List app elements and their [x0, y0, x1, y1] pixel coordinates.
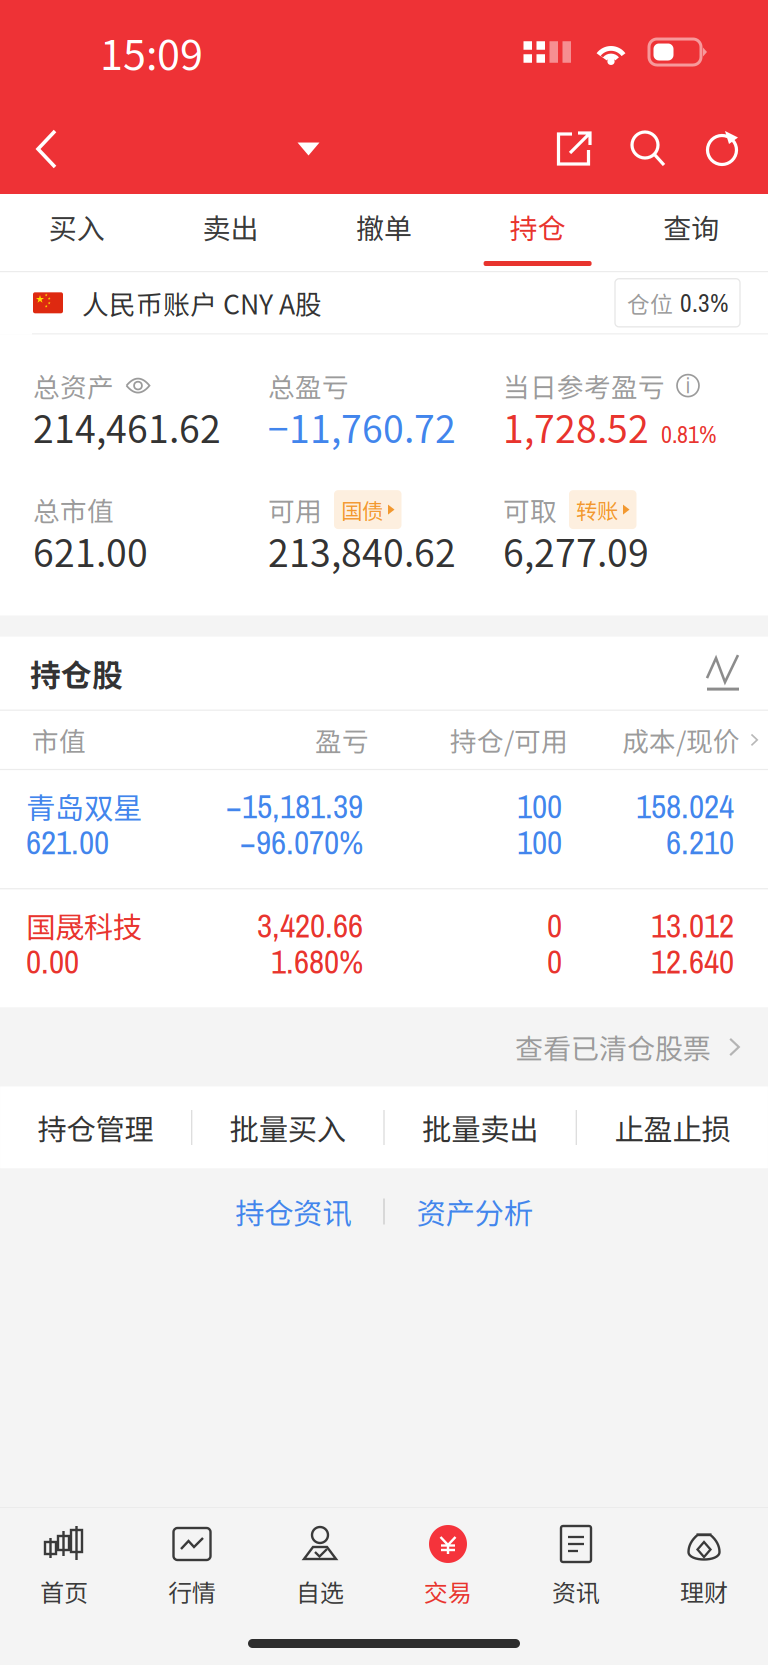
staticText: 621.00 [33, 524, 148, 578]
button[interactable]: 青岛双星 [0, 770, 768, 888]
button[interactable]: Search [611, 106, 685, 192]
staticText: 资讯 [552, 1574, 600, 1609]
staticText: 15:09 [100, 22, 203, 82]
staticText: 持仓管理 [38, 1106, 154, 1149]
staticText: 1.680% [271, 939, 363, 984]
staticText: 持仓/可用 [450, 721, 568, 759]
button[interactable]: 资产分析 [405, 1190, 545, 1233]
staticText: 批量卖出 [422, 1106, 538, 1149]
staticText: 3,420.66 [257, 903, 363, 948]
button[interactable]: 交易 [384, 1508, 512, 1620]
staticText: 0.81% [661, 418, 716, 450]
staticText: 持仓 [510, 206, 566, 247]
staticText: 100 [517, 784, 562, 829]
staticText: 总市值 [33, 490, 114, 529]
button[interactable]: 理财 [640, 1508, 768, 1620]
staticText: 卖出 [202, 206, 258, 247]
button[interactable]: 行情 [128, 1508, 256, 1620]
button[interactable]: Share [537, 106, 611, 192]
staticText: 资产分析 [417, 1190, 533, 1233]
button[interactable]: 持仓资讯 [223, 1190, 363, 1233]
staticText: 总资产 [33, 366, 114, 405]
staticText: 可用 [268, 490, 322, 529]
button[interactable]: 持仓管理 [0, 1086, 191, 1168]
staticText: 0.3% [680, 286, 728, 320]
button[interactable]: 撤单 [307, 194, 461, 271]
staticText: 止盈止损 [614, 1106, 730, 1149]
staticText: 0 [547, 903, 562, 948]
button[interactable]: 首页 [0, 1508, 128, 1620]
button[interactable]: 买入 [0, 194, 154, 271]
button[interactable]: Chart [696, 645, 750, 701]
staticText: 0.00 [26, 939, 79, 984]
button[interactable]: 自选 [256, 1508, 384, 1620]
staticText: −15,181.39 [226, 784, 363, 829]
staticText: 人民币账户 CNY A股 [82, 283, 322, 322]
staticText: 首页 [40, 1574, 88, 1609]
staticText: 成本/现价 [622, 721, 740, 759]
button[interactable]: 查看已清仓股票 [0, 1007, 768, 1086]
staticText: 青岛双星 [26, 785, 142, 827]
staticText: 查询 [663, 206, 719, 247]
staticText: 转账 [576, 494, 618, 525]
staticText: 总盈亏 [268, 366, 349, 405]
staticText: 理财 [680, 1574, 728, 1609]
staticText: 持仓资讯 [235, 1190, 351, 1233]
staticText: 6.210 [666, 820, 734, 865]
staticText: 买入 [49, 206, 105, 247]
staticText: 12.640 [651, 939, 734, 984]
staticText: 0 [547, 939, 562, 984]
staticText: 持仓股 [30, 651, 123, 695]
staticText: 仓位 [627, 286, 673, 319]
staticText: 158.024 [636, 784, 734, 829]
staticText: 6,277.09 [503, 524, 649, 578]
button[interactable]: 批量卖出 [385, 1086, 576, 1168]
staticText: 批量买入 [230, 1106, 346, 1149]
button[interactable]: 卖出 [154, 194, 307, 271]
staticText: 621.00 [26, 820, 109, 865]
staticText: 214,461.62 [33, 400, 221, 454]
button[interactable]: 资讯 [512, 1508, 640, 1620]
button[interactable]: 持仓 [461, 194, 614, 271]
staticText: −11,760.72 [268, 400, 456, 454]
staticText: 市值 [32, 721, 86, 759]
staticText: 100 [517, 820, 562, 865]
staticText: 1,728.52 [503, 400, 649, 454]
staticText: 撤单 [356, 206, 412, 247]
staticText: 可取 [503, 490, 557, 529]
staticText: 自选 [296, 1574, 344, 1609]
button[interactable]: 人民币账户 CNY A股 [0, 272, 768, 333]
staticText: 盈亏 [315, 721, 369, 759]
staticText: −96.070% [240, 820, 363, 865]
staticText: 当日参考盈亏 [503, 366, 665, 405]
button[interactable]: Back [0, 106, 80, 192]
staticText: 国晟科技 [26, 904, 142, 947]
button[interactable]: 止盈止损 [577, 1086, 768, 1168]
staticText: 国债 [341, 494, 383, 525]
staticText: 查看已清仓股票 [515, 1027, 711, 1067]
staticText: 213,840.62 [268, 524, 456, 578]
staticText: 13.012 [651, 903, 734, 948]
button[interactable]: 批量买入 [192, 1086, 383, 1168]
staticText: i [685, 371, 690, 400]
button[interactable]: 国晟科技 [0, 889, 768, 1007]
button[interactable]: 查询 [614, 194, 768, 271]
staticText: 交易 [424, 1574, 472, 1609]
button[interactable]: Refresh [685, 106, 768, 192]
staticText: 行情 [168, 1574, 216, 1609]
button[interactable]: Account switcher [279, 124, 337, 173]
